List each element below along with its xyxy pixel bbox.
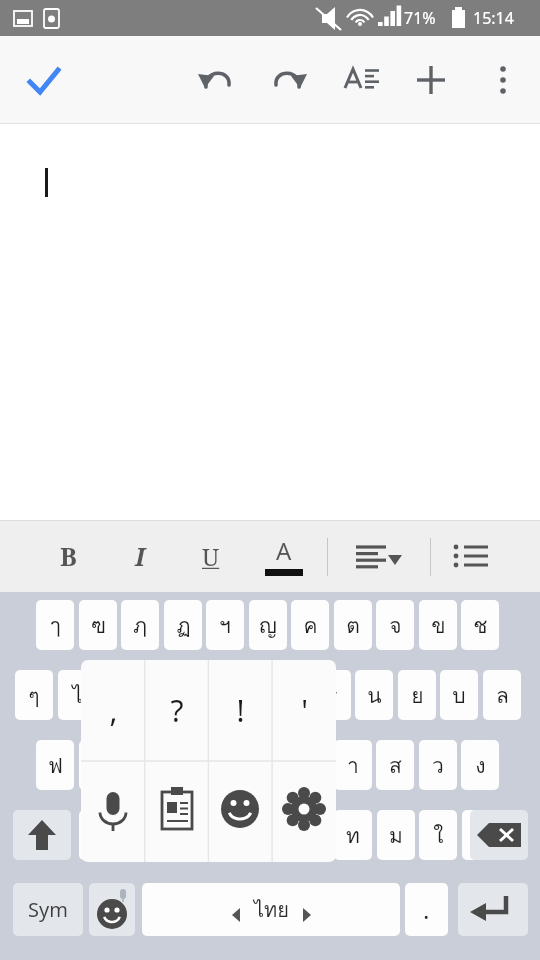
button[interactable]: ป — [122, 810, 160, 860]
button[interactable]: Voice input — [81, 761, 145, 862]
button[interactable]: More options — [481, 58, 525, 102]
button[interactable]: , — [81, 660, 145, 761]
staticText: ฯ — [219, 609, 231, 642]
button[interactable]: ฯ — [206, 600, 244, 650]
staticText: ล — [496, 679, 509, 712]
button[interactable]: ๅ — [36, 600, 74, 650]
button[interactable]: ำ — [100, 670, 138, 720]
button[interactable]: List — [450, 534, 498, 582]
staticText: แ — [176, 819, 190, 852]
button[interactable]: Undo — [195, 58, 239, 102]
button[interactable]: ่ — [291, 740, 329, 790]
button[interactable]: Insert — [409, 58, 453, 102]
button[interactable]: Space, Thai — [142, 883, 400, 936]
button[interactable]: Text color — [261, 532, 307, 578]
button[interactable]: ะ — [185, 670, 223, 720]
button[interactable]: เ — [206, 740, 244, 790]
button[interactable]: ห — [79, 740, 117, 790]
button[interactable]: ื — [292, 810, 330, 860]
staticText: ด — [176, 749, 190, 782]
button[interactable]: ั — [228, 670, 266, 720]
button[interactable]: Italic — [117, 533, 163, 579]
button[interactable]: ช — [461, 600, 499, 650]
button[interactable]: ฏ — [164, 600, 202, 650]
staticText: I — [135, 539, 146, 573]
staticText: บ — [452, 679, 466, 712]
button[interactable]: Alignment — [352, 534, 408, 590]
button[interactable]: ญ — [249, 600, 287, 650]
staticText: ไทย — [254, 894, 289, 926]
staticText: 15:14 — [473, 7, 514, 29]
button[interactable]: ฃ — [79, 600, 117, 650]
staticText: า — [347, 749, 359, 782]
button[interactable]: ฟ — [36, 740, 74, 790]
button[interactable]: แ — [164, 810, 202, 860]
button[interactable]: ก — [121, 740, 159, 790]
button[interactable]: Period — [405, 883, 448, 936]
button[interactable]: ข — [419, 600, 457, 650]
button[interactable]: ม — [377, 810, 415, 860]
button[interactable]: ด — [164, 740, 202, 790]
staticText: . — [423, 893, 430, 926]
button[interactable]: Done — [20, 58, 66, 104]
button[interactable]: ไ — [58, 670, 96, 720]
button[interactable]: ๆ — [15, 670, 53, 720]
button[interactable]: า — [334, 740, 372, 790]
button[interactable]: น — [355, 670, 393, 720]
button[interactable]: ร — [313, 670, 351, 720]
button[interactable]: ผ — [79, 810, 117, 860]
button[interactable]: Symbols — [13, 883, 83, 936]
button[interactable]: ล — [483, 670, 521, 720]
staticText: ป — [134, 819, 148, 852]
button[interactable]: ว — [419, 740, 457, 790]
button[interactable]: จ — [376, 600, 414, 650]
button[interactable]: อ — [207, 810, 245, 860]
button[interactable]: Settings — [272, 761, 336, 862]
button[interactable]: ท — [334, 810, 372, 860]
button[interactable]: Bold — [45, 533, 91, 579]
button[interactable]: ส — [376, 740, 414, 790]
button[interactable]: ใ — [419, 810, 457, 860]
button[interactable]: Redo — [266, 58, 310, 102]
button[interactable]: บ — [440, 670, 478, 720]
staticText: , — [109, 690, 118, 731]
button[interactable]: Enter — [458, 883, 528, 936]
button[interactable]: ฦ — [121, 600, 159, 650]
staticText: ใ — [433, 819, 444, 852]
staticText: น — [367, 679, 382, 712]
staticText: อ — [220, 819, 233, 852]
staticText: ค — [303, 609, 318, 642]
button[interactable]: Emoji and voice — [89, 883, 135, 936]
staticText: ว — [432, 749, 444, 782]
button[interactable]: Emoji — [208, 761, 272, 862]
button[interactable]: ี — [270, 670, 308, 720]
button[interactable]: ? — [145, 660, 209, 761]
button[interactable]: ค — [291, 600, 329, 650]
staticText: ? — [170, 690, 184, 731]
staticText: ห — [91, 749, 105, 782]
staticText: ไ — [72, 679, 83, 712]
staticText: ฝ — [475, 819, 488, 852]
button[interactable]: ง — [461, 740, 499, 790]
button[interactable]: ิ — [249, 810, 287, 860]
staticText: ผ — [92, 819, 105, 852]
staticText: A — [276, 534, 292, 567]
button[interactable]: Clipboard — [145, 761, 209, 862]
button[interactable]: ้ — [249, 740, 287, 790]
button[interactable]: Text formatting — [338, 58, 382, 102]
staticText: ฃ — [91, 609, 106, 642]
staticText: ฦ — [133, 609, 147, 642]
button[interactable]: ' — [272, 660, 336, 761]
button[interactable]: ! — [208, 660, 272, 761]
button[interactable]: ต — [334, 600, 372, 650]
button[interactable]: Backspace — [470, 810, 528, 860]
button[interactable]: พ — [143, 670, 181, 720]
button[interactable]: Shift — [13, 810, 71, 860]
staticText: ฟ — [48, 749, 63, 782]
staticText: ร — [326, 679, 338, 712]
button[interactable]: Underline — [188, 533, 234, 579]
button[interactable]: ฝ — [462, 810, 500, 860]
button[interactable]: ย — [398, 670, 436, 720]
